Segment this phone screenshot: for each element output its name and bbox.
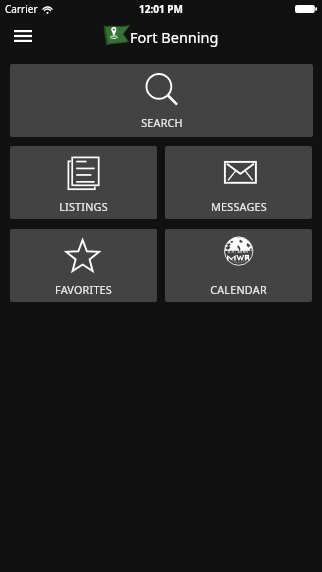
staticText: CALENDAR [210,282,267,297]
button[interactable]: Open navigation menu [6,24,39,48]
staticText: LISTINGS [59,199,108,214]
button[interactable]: MESSAGES [165,146,312,219]
staticText: SEARCH [141,115,183,130]
staticText: MESSAGES [211,199,267,214]
staticText: Carrier [5,2,38,16]
staticText: FAVORITES [55,282,112,297]
staticText: Fort Benning [130,27,219,47]
staticText: 12:01 PM [139,2,183,16]
button[interactable]: U.S. ARMY [165,229,312,302]
button[interactable]: SEARCH [10,64,313,137]
staticText: U.S. ARMY [228,250,249,254]
button[interactable]: LISTINGS [10,146,157,219]
button[interactable]: FAVORITES [10,229,157,302]
